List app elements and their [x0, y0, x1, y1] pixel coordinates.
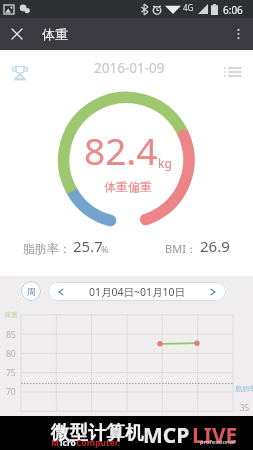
staticText: 75 [6, 367, 16, 379]
staticText: 2016-01-09 [94, 59, 165, 77]
staticText: Computer. [76, 437, 120, 449]
staticText: kg [158, 155, 172, 171]
staticText: 微型计算机 [51, 421, 144, 444]
button[interactable]: Previous week [48, 282, 74, 301]
staticText: 82.4 [84, 125, 158, 175]
staticText: 4G [183, 2, 194, 13]
button[interactable]: More options [223, 18, 253, 50]
staticText: 脂肪率 [235, 384, 253, 393]
staticText: 体重 [4, 310, 18, 319]
staticText: 70 [6, 386, 16, 398]
staticText: professional [200, 438, 235, 446]
button[interactable]: Close [0, 18, 34, 50]
staticText: 脂肪率： [23, 241, 71, 256]
staticText: icro [60, 437, 76, 449]
staticText: MCP [143, 421, 190, 450]
staticText: % [101, 243, 109, 255]
staticText: BMI： [165, 241, 197, 256]
button[interactable]: Records list [218, 58, 246, 86]
button[interactable]: 周 [21, 281, 41, 301]
staticText: 体重偏重 [104, 179, 152, 194]
staticText: 01月04日~01月10日 [74, 285, 200, 299]
button[interactable]: Achievements [5, 58, 35, 88]
staticText: LIVE [192, 421, 238, 450]
staticText: 80 [6, 348, 16, 360]
staticText: 25.7 [73, 236, 103, 256]
button[interactable]: Next week [200, 282, 226, 301]
staticText: M [51, 437, 60, 449]
staticText: 体重 [42, 26, 68, 42]
staticText: 周 [27, 286, 36, 297]
staticText: 6:06 [223, 3, 243, 17]
staticText: 85 [6, 329, 16, 341]
staticText: 35 [240, 402, 250, 413]
staticText: 26.9 [200, 236, 230, 256]
